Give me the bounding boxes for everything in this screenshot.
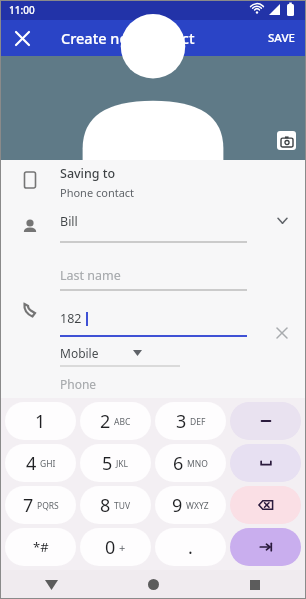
button[interactable]: *#: [5, 528, 76, 566]
button[interactable]: 4: [5, 444, 76, 482]
button[interactable]: Backspace: [230, 486, 301, 524]
staticText: Phone: [60, 376, 97, 392]
button[interactable]: 2: [80, 402, 151, 440]
button[interactable]: 3: [155, 402, 226, 440]
staticText: Last name: [60, 267, 121, 284]
button[interactable]: Next field: [230, 528, 301, 566]
staticText: GHI: [40, 458, 56, 470]
staticText: 1: [35, 409, 46, 434]
button[interactable]: Saving to: [60, 160, 306, 204]
staticText: 8: [100, 493, 111, 518]
staticText: 5: [102, 451, 113, 476]
button[interactable]: Home: [102, 570, 204, 599]
button[interactable]: Space: [230, 444, 301, 482]
staticText: 2: [100, 409, 111, 434]
staticText: SAVE: [268, 30, 295, 46]
staticText: 6: [173, 451, 184, 476]
staticText: JKL: [116, 458, 129, 470]
staticText: Bill: [60, 213, 78, 230]
button[interactable]: Close: [8, 24, 36, 52]
staticText: MNO: [187, 458, 208, 470]
staticText: +: [119, 540, 126, 555]
staticText: 11:00: [9, 3, 35, 17]
staticText: .: [188, 535, 193, 560]
staticText: WXYZ: [186, 500, 209, 512]
staticText: TUV: [114, 500, 131, 512]
staticText: PQRS: [37, 500, 59, 512]
button[interactable]: 9: [155, 486, 226, 524]
button[interactable]: .: [155, 528, 226, 566]
button[interactable]: 6: [155, 444, 226, 482]
staticText: Create new contact: [61, 28, 195, 48]
button[interactable]: Dash: [230, 402, 301, 440]
staticText: 7: [23, 493, 34, 518]
button[interactable]: 0: [80, 528, 151, 566]
staticText: 9: [172, 493, 183, 518]
staticText: Saving to: [60, 165, 116, 182]
button[interactable]: Expand name fields: [272, 210, 292, 230]
staticText: Phone contact: [60, 185, 135, 200]
button[interactable]: Hide keyboard: [0, 570, 102, 599]
button[interactable]: Clear phone number: [272, 323, 292, 343]
staticText: 3: [176, 409, 187, 434]
staticText: 0: [105, 535, 116, 560]
staticText: ABC: [114, 416, 131, 428]
staticText: Mobile: [60, 345, 99, 361]
button[interactable]: 8: [80, 486, 151, 524]
button[interactable]: Last name: [60, 262, 306, 292]
button[interactable]: Bill: [60, 204, 306, 244]
button[interactable]: Recent apps: [204, 570, 306, 599]
button[interactable]: Mobile: [60, 345, 142, 361]
button[interactable]: SAVE: [263, 26, 300, 50]
staticText: DEF: [190, 416, 206, 428]
staticText: 4: [26, 451, 37, 476]
button[interactable]: 182: [60, 304, 306, 338]
button[interactable]: 5: [80, 444, 151, 482]
button[interactable]: 7: [5, 486, 76, 524]
staticText: *#: [33, 538, 49, 556]
button[interactable]: 1: [5, 402, 76, 440]
button[interactable]: Change photo: [277, 131, 296, 150]
staticText: 182: [60, 310, 82, 327]
